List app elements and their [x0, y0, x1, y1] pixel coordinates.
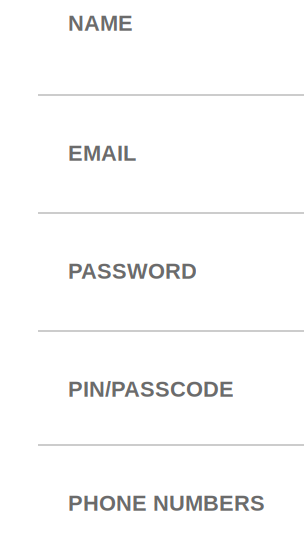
- staticText: PHONE NUMBERS: [68, 491, 265, 515]
- button[interactable]: PASSWORD: [0, 214, 304, 332]
- staticText: PIN/PASSCODE: [68, 377, 234, 401]
- staticText: PASSWORD: [68, 259, 197, 283]
- button[interactable]: EMAIL: [0, 96, 304, 214]
- button[interactable]: PIN/PASSCODE: [0, 332, 304, 446]
- staticText: EMAIL: [68, 141, 136, 165]
- button[interactable]: PHONE NUMBERS: [0, 446, 304, 534]
- staticText: NAME: [68, 11, 133, 35]
- button[interactable]: NAME: [0, 0, 304, 96]
